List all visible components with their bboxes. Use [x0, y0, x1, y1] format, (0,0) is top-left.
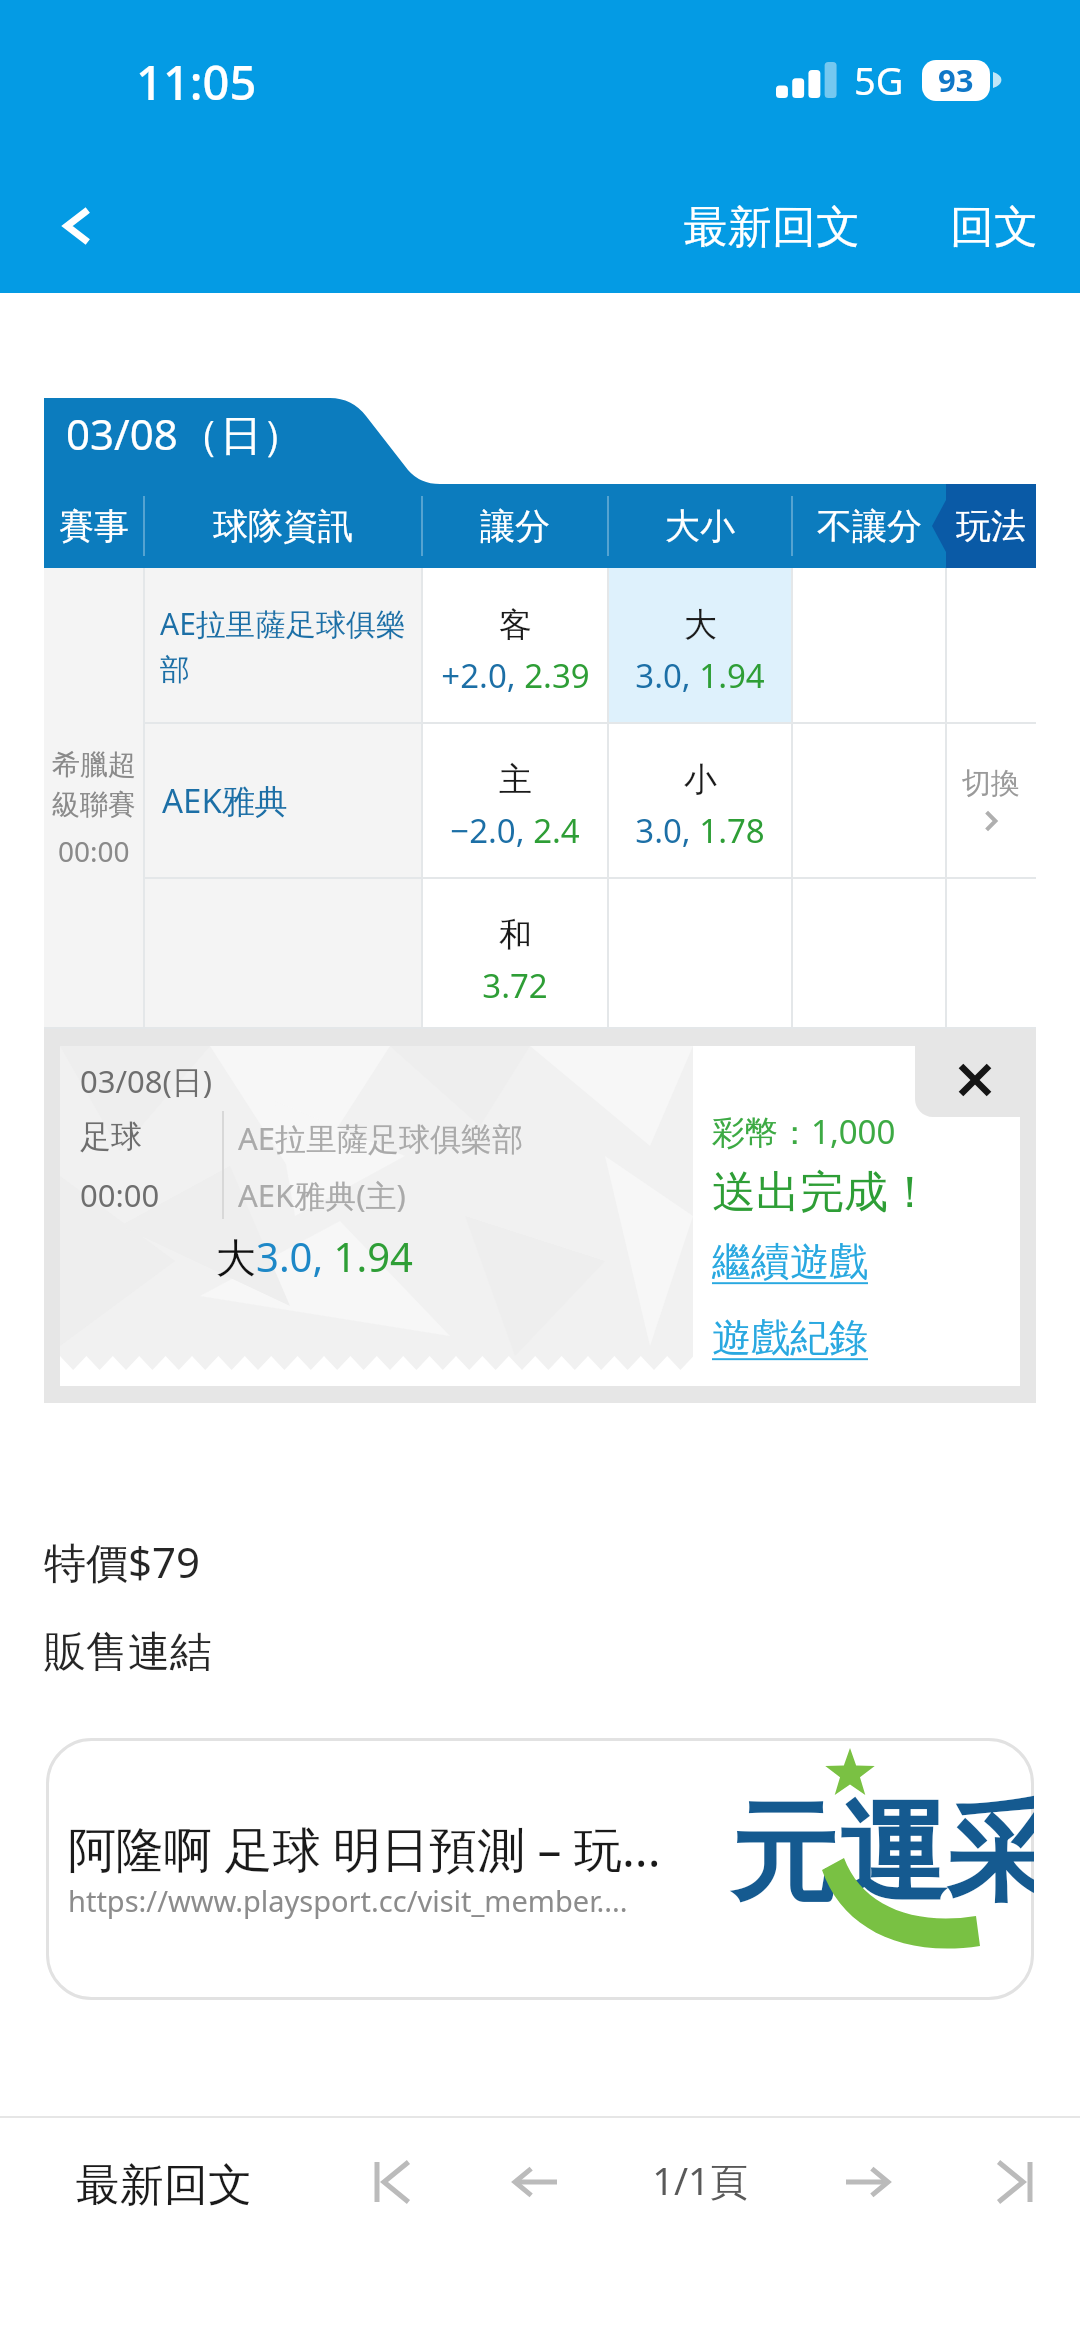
staticText: 送出完成！	[712, 1165, 932, 1220]
staticText: https://www.playsport.cc/visit_member...…	[68, 1881, 628, 1920]
button[interactable]: 最新回文	[670, 188, 874, 267]
staticText: 切換	[962, 765, 1020, 802]
staticText: 販售連結	[44, 1626, 212, 1679]
staticText: AEK雅典(主)	[238, 1174, 406, 1216]
button[interactable]: Previous page	[491, 2138, 579, 2226]
button[interactable]: 阿隆啊 足球 明日預測 – 玩...	[46, 1738, 1034, 2000]
staticText: 1/1頁	[652, 2154, 748, 2206]
staticText: 不讓分	[817, 504, 922, 548]
button[interactable]: 客	[422, 568, 608, 723]
button[interactable]: 切換	[946, 568, 1036, 1029]
staticText: 03/08（日）	[66, 405, 304, 462]
staticText: 球隊資訊	[213, 504, 353, 548]
staticText: 足球	[80, 1117, 142, 1156]
button[interactable]: Back	[40, 190, 112, 262]
staticText: 主	[499, 759, 532, 801]
staticText: 大	[684, 604, 717, 646]
staticText: 彩幣：1,000	[712, 1109, 896, 1154]
staticText: 大小	[665, 504, 735, 548]
staticText: 03/08(日)	[80, 1060, 213, 1102]
staticText: 希臘超 級聯賽	[52, 747, 136, 822]
staticText: 和	[499, 914, 532, 956]
staticText: 93	[938, 59, 974, 101]
button[interactable]: First page	[351, 2138, 439, 2226]
button[interactable]: 小	[608, 723, 792, 878]
staticText: −2.0, 2.4	[450, 808, 580, 853]
button[interactable]: 和	[422, 878, 608, 1029]
staticText: 00:00	[80, 1174, 160, 1216]
staticText: 特價$79	[44, 1533, 201, 1590]
button[interactable]: 主	[422, 723, 608, 878]
staticText: 大3.0, 1.94	[216, 1229, 413, 1284]
staticText: 讓分	[480, 504, 550, 548]
staticText: 最新回文	[76, 2158, 252, 2213]
staticText: 00:00	[58, 832, 130, 870]
staticText: 阿隆啊 足球 明日預測 – 玩...	[68, 1816, 661, 1882]
button[interactable]: 回文	[936, 188, 1052, 267]
button[interactable]: 最新回文	[62, 2148, 266, 2223]
staticText: 玩法	[956, 504, 1026, 548]
staticText: AE拉里薩足球俱樂 部	[160, 603, 406, 689]
staticText: 3.0, 1.94	[635, 653, 765, 698]
staticText: 賽事	[59, 504, 129, 548]
button[interactable]: 繼續遊戲	[712, 1237, 868, 1286]
staticText: 客	[499, 604, 532, 646]
staticText: 回文	[950, 200, 1038, 255]
staticText: AEK雅典	[162, 778, 288, 823]
staticText: 繼續遊戲	[712, 1237, 868, 1286]
button[interactable]: 遊戲紀錄	[712, 1313, 868, 1362]
staticText: 11:05	[136, 50, 257, 114]
button[interactable]: Last page	[968, 2138, 1056, 2226]
staticText: 3.72	[482, 963, 548, 1008]
staticText: 元運采	[730, 1786, 1034, 1922]
staticText: 5G	[854, 54, 904, 106]
staticText: 小	[684, 759, 717, 801]
staticText: 遊戲紀錄	[712, 1313, 868, 1362]
staticText: 最新回文	[684, 200, 860, 255]
staticText: 3.0, 1.78	[635, 808, 765, 853]
staticText: AE拉里薩足球俱樂部	[238, 1117, 524, 1159]
button[interactable]: Next page	[824, 2138, 912, 2226]
button[interactable]: Close	[944, 1049, 1006, 1111]
button[interactable]: 大	[608, 568, 792, 723]
staticText: +2.0, 2.39	[441, 653, 590, 698]
